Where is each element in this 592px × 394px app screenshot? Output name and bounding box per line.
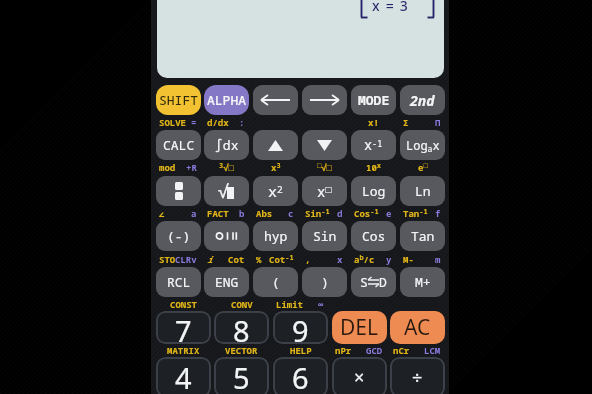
staticText: SOLVE	[159, 116, 187, 128]
button[interactable]: hyp	[253, 221, 298, 251]
staticText: Log	[362, 182, 386, 200]
staticText: STO	[159, 253, 176, 265]
staticText: +R	[186, 161, 197, 173]
staticText: CLRv	[175, 253, 197, 265]
button[interactable]: S	[351, 267, 396, 297]
staticText: %	[256, 253, 262, 265]
staticText: Cos-1	[354, 207, 379, 219]
button[interactable]: (	[253, 267, 298, 297]
button[interactable]: x□	[302, 176, 347, 206]
button[interactable]: x2	[253, 176, 298, 206]
button[interactable]: CALC	[156, 130, 201, 160]
staticText: SHIFT	[159, 91, 199, 109]
button[interactable]: 8	[214, 311, 269, 344]
button[interactable]: RCL	[156, 267, 201, 297]
staticText: x3	[271, 161, 281, 173]
staticText: 3√□	[219, 161, 235, 173]
staticText: )	[321, 273, 329, 291]
staticText: i	[207, 253, 213, 265]
button[interactable]: MODE	[351, 85, 396, 115]
button[interactable]	[204, 221, 249, 251]
button[interactable]: ∫dx	[204, 130, 249, 160]
button[interactable]: ENG	[204, 267, 249, 297]
staticText: Ln	[415, 182, 431, 200]
staticText: S	[360, 273, 368, 291]
staticText: Sin	[313, 227, 337, 245]
button[interactable]: Cos	[351, 221, 396, 251]
staticText: x2	[268, 181, 283, 201]
staticText: mod	[159, 161, 176, 173]
button[interactable]	[253, 85, 298, 115]
staticText: Π	[435, 116, 441, 128]
staticText: √	[218, 179, 229, 204]
button[interactable]: AC	[390, 311, 445, 344]
button[interactable]: Log	[351, 176, 396, 206]
staticText: ALPHA	[207, 91, 247, 109]
button[interactable]: ÷	[390, 357, 445, 394]
staticText: Tan-1	[403, 207, 428, 219]
staticText: x-1	[364, 136, 383, 154]
staticText: CALC	[163, 136, 195, 154]
staticText: M-	[403, 253, 414, 265]
button[interactable]: 9	[273, 311, 328, 344]
staticText: x = 3	[372, 0, 409, 15]
button[interactable]: )	[302, 267, 347, 297]
button[interactable]: 2nd	[400, 85, 445, 115]
staticText: ENG	[215, 273, 239, 291]
staticText: ∞	[318, 298, 324, 310]
staticText: (-)	[167, 227, 191, 245]
staticText: Sin-1	[305, 207, 330, 219]
button[interactable]: x-1	[351, 130, 396, 160]
button[interactable]: ALPHA	[204, 85, 249, 115]
staticText: ,	[305, 253, 311, 265]
staticText: 6	[292, 358, 309, 394]
button[interactable]: DEL	[332, 311, 387, 344]
button[interactable]: Sin	[302, 221, 347, 251]
staticText: nCr	[393, 344, 410, 356]
staticText: AC	[404, 313, 431, 342]
staticText: 10x	[366, 161, 382, 173]
button[interactable]	[302, 85, 347, 115]
button[interactable]: √	[204, 176, 249, 206]
button[interactable]: Logax	[400, 130, 445, 160]
button[interactable]: Tan	[400, 221, 445, 251]
staticText: c	[288, 207, 294, 219]
button[interactable]: Ln	[400, 176, 445, 206]
staticText: 9	[292, 311, 309, 344]
staticText: D	[379, 273, 387, 291]
button[interactable]: ×	[332, 357, 387, 394]
staticText: RCL	[167, 273, 191, 291]
staticText: (	[272, 273, 280, 291]
staticText: CONST	[170, 298, 198, 310]
staticText: MATRIX	[167, 344, 200, 356]
staticText: d/dx	[207, 116, 229, 128]
button[interactable]: 6	[273, 357, 328, 394]
staticText: 8	[233, 311, 250, 344]
staticText: d	[337, 207, 343, 219]
button[interactable]: 7	[156, 311, 211, 344]
button[interactable]: SHIFT	[156, 85, 201, 115]
staticText: Σ	[403, 116, 409, 128]
staticText: hyp	[264, 227, 288, 245]
staticText: 7	[175, 311, 192, 344]
button[interactable]	[156, 176, 201, 206]
staticText: VECTOR	[225, 344, 258, 356]
button[interactable]: 5	[214, 357, 269, 394]
staticText: e	[386, 207, 392, 219]
button[interactable]	[253, 130, 298, 160]
button[interactable]: (-)	[156, 221, 201, 251]
staticText: f	[435, 207, 441, 219]
staticText: Cot	[228, 253, 245, 265]
staticText: ∫dx	[215, 136, 239, 154]
button[interactable]	[302, 130, 347, 160]
staticText: Cot-1	[269, 253, 294, 265]
button[interactable]: 4	[156, 357, 211, 394]
staticText: FACT	[207, 207, 229, 219]
staticText: ×	[354, 365, 365, 390]
staticText: 2nd	[410, 91, 435, 110]
staticText: :	[239, 116, 245, 128]
staticText: nPr	[335, 344, 352, 356]
staticText: ÷	[412, 365, 423, 390]
staticText: CONV	[231, 298, 253, 310]
button[interactable]: M+	[400, 267, 445, 297]
